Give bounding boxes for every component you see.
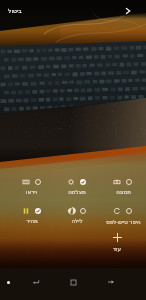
staticText: וידאו	[26, 189, 37, 195]
staticText: ביטול	[8, 7, 22, 14]
button[interactable]: Next	[122, 5, 133, 16]
button[interactable]: מצלמה	[54, 179, 100, 195]
staticText: היפר טיים-לפס	[106, 218, 141, 225]
staticText: מצלמה	[68, 189, 86, 195]
button[interactable]: Home	[55, 268, 92, 296]
staticText: לילה	[71, 218, 83, 224]
button[interactable]: היפר טיים-לפס	[100, 208, 146, 225]
button[interactable]: ביטול	[8, 7, 22, 14]
staticText: עוד	[113, 246, 121, 252]
button[interactable]: תמונה	[100, 179, 146, 195]
staticText: תמונה	[116, 189, 131, 195]
button[interactable]: Back	[17, 268, 55, 296]
button[interactable]: Recents	[92, 268, 129, 296]
button[interactable]: עוד	[94, 233, 140, 252]
button[interactable]: וידאו	[9, 179, 54, 195]
button[interactable]: לילה	[54, 208, 100, 224]
button[interactable]: מהיר	[9, 208, 54, 224]
staticText: מהיר	[26, 218, 38, 224]
